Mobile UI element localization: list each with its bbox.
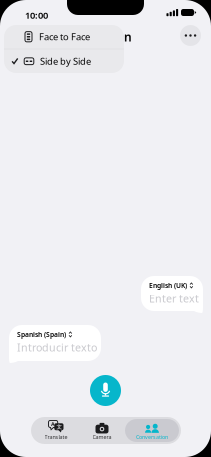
button[interactable]: Side by Side [4, 49, 124, 73]
button[interactable]: English (UK) [141, 276, 203, 313]
staticText: Side by Side [40, 55, 91, 67]
button[interactable]: Spanish (Spain) [9, 325, 101, 363]
button[interactable]: A [33, 419, 79, 442]
staticText: Camera [92, 433, 111, 441]
staticText: Face to Face [39, 31, 90, 43]
button[interactable]: Conversation [125, 419, 179, 442]
staticText: 10:00 [25, 9, 48, 21]
staticText: Spanish (Spain) [17, 330, 66, 339]
staticText: Conversation [136, 433, 168, 441]
staticText: Introducir texto [17, 340, 97, 355]
staticText: A [51, 421, 55, 428]
staticText: English (UK) [149, 281, 187, 290]
button[interactable]: More options [180, 25, 201, 46]
button[interactable]: Face to Face [4, 25, 124, 49]
staticText: 文 [56, 424, 61, 430]
staticText: Enter text [149, 291, 199, 306]
button[interactable]: Record [90, 375, 121, 406]
staticText: Conversation [54, 29, 132, 45]
staticText: Translate [44, 433, 67, 441]
button[interactable]: Camera [79, 419, 125, 442]
